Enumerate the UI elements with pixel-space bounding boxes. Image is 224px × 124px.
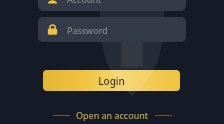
staticText: Login (98, 74, 125, 88)
button[interactable]: Login (43, 70, 180, 91)
staticText: Password (67, 24, 108, 36)
staticText: Account (67, 0, 102, 5)
button[interactable]: Account (38, 0, 186, 11)
staticText: Open an account (76, 109, 149, 121)
button[interactable]: Open an account (47, 106, 178, 124)
button[interactable]: Password (38, 17, 186, 42)
